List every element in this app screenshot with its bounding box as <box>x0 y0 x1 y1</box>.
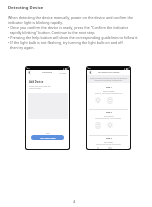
staticText: 9:41 <box>27 68 30 70</box>
staticText: Add Device <box>42 71 53 74</box>
other: Back <box>28 71 31 74</box>
staticText: Wi-Fi settings <box>104 115 114 117</box>
other: Back <box>89 71 92 74</box>
staticText: When detecting the device manually, powe… <box>8 15 139 50</box>
staticText: 4 <box>73 199 76 205</box>
button[interactable]: Start Adding Device <box>31 135 64 140</box>
staticText: Start Adding Device <box>40 137 56 139</box>
staticText: Add Device <box>29 80 44 84</box>
button[interactable]: Help <box>46 132 50 134</box>
staticText: Connect the phone to a 2.4GHz network <box>95 118 122 120</box>
staticText: To connect Wi-Fi quickly <box>98 71 120 74</box>
staticText: Follow the instructions below to reset t… <box>90 77 127 81</box>
staticText: Detecting Device <box>8 5 44 11</box>
staticText: Step 2 <box>106 111 112 114</box>
staticText: Start pairing <box>104 141 113 143</box>
staticText: Power on, press and hold the button 5 se… <box>95 93 123 95</box>
staticText: Step 1 <box>106 86 112 89</box>
staticText: Tap the button and wait for the device <box>96 144 121 146</box>
staticText: 9:41 <box>88 68 91 70</box>
button[interactable]: AP Mode <box>59 72 67 74</box>
staticText: Reset the device <box>103 90 115 92</box>
staticText: Choose your device type and follow the s… <box>29 85 51 90</box>
staticText: Step 3 <box>106 137 112 140</box>
